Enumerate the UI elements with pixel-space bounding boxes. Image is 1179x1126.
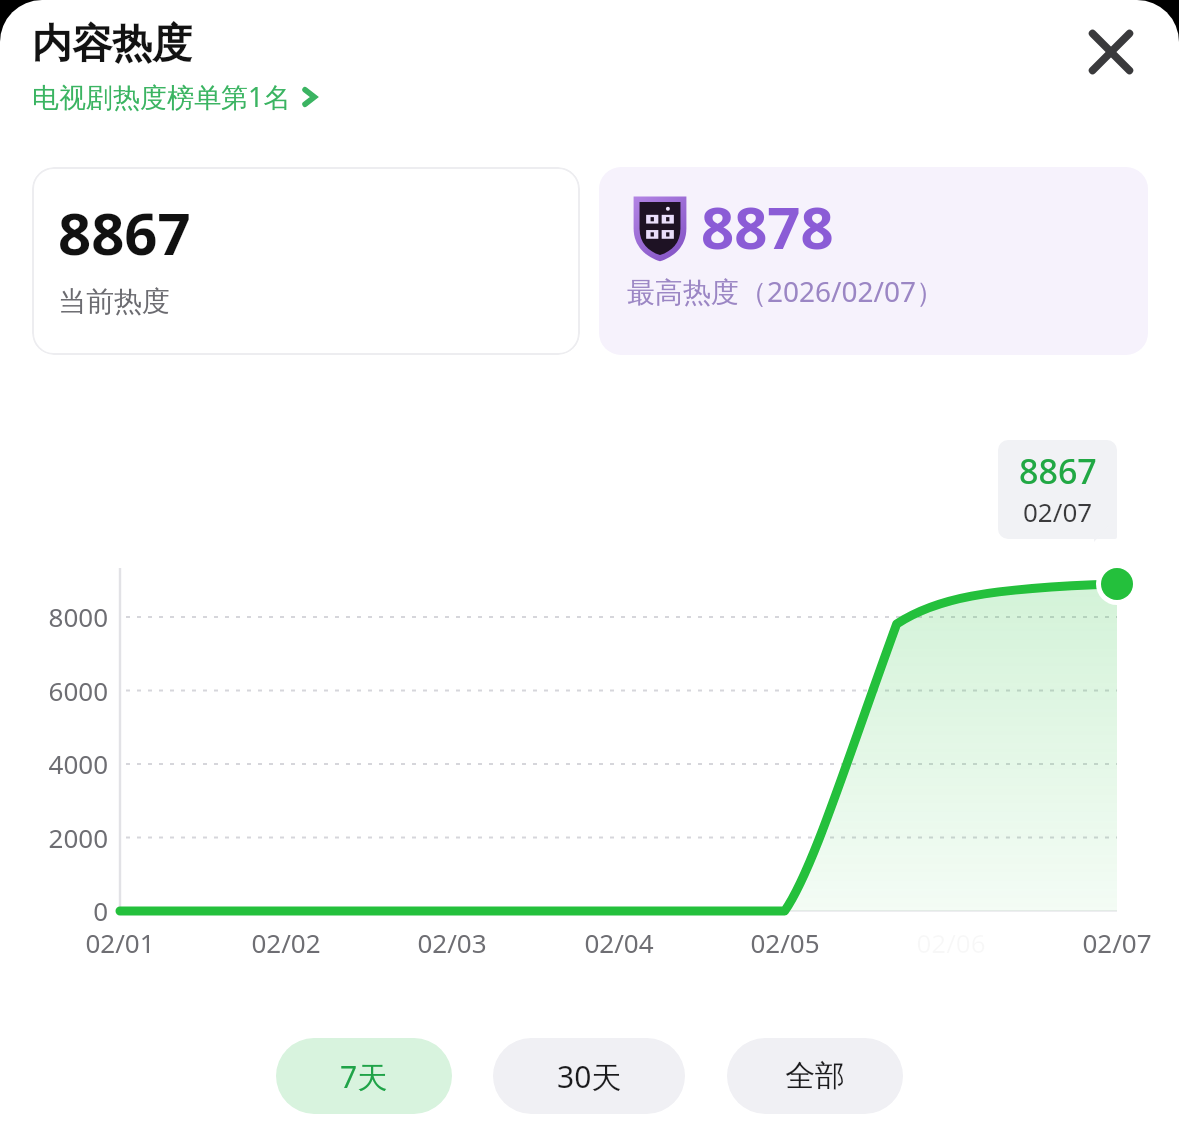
- staticText: 全部: [785, 1057, 845, 1095]
- staticText: 6000: [48, 673, 108, 708]
- staticText: 当前热度: [58, 284, 170, 319]
- staticText: 02/03: [417, 925, 487, 960]
- button[interactable]: 30天: [493, 1038, 685, 1114]
- button[interactable]: 8878: [599, 167, 1148, 355]
- staticText: 8867: [1019, 448, 1097, 494]
- button[interactable]: 7天: [276, 1038, 452, 1114]
- button[interactable]: 全部: [727, 1038, 903, 1114]
- staticText: 02/07: [1082, 925, 1152, 960]
- staticText: 8878: [701, 187, 834, 266]
- staticText: 4000: [48, 746, 108, 781]
- button[interactable]: 电视剧热度榜单第1名: [32, 78, 320, 115]
- staticText: 02/02: [251, 925, 321, 960]
- staticText: 内容热度: [32, 18, 192, 68]
- staticText: 02/01: [85, 925, 155, 960]
- staticText: 2000: [48, 820, 108, 855]
- staticText: 最高热度（2026/02/07）: [627, 272, 944, 310]
- staticText: 02/04: [584, 925, 654, 960]
- button[interactable]: 8867: [32, 167, 580, 355]
- staticText: 电视剧热度榜单第1名: [32, 78, 291, 115]
- staticText: 30天: [557, 1056, 622, 1097]
- staticText: 8000: [48, 599, 108, 634]
- staticText: 0: [93, 893, 108, 928]
- staticText: 8867: [58, 193, 191, 272]
- staticText: 7天: [340, 1056, 388, 1097]
- staticText: 02/05: [750, 925, 820, 960]
- staticText: 02/07: [1023, 494, 1093, 529]
- button[interactable]: Close: [1073, 14, 1149, 90]
